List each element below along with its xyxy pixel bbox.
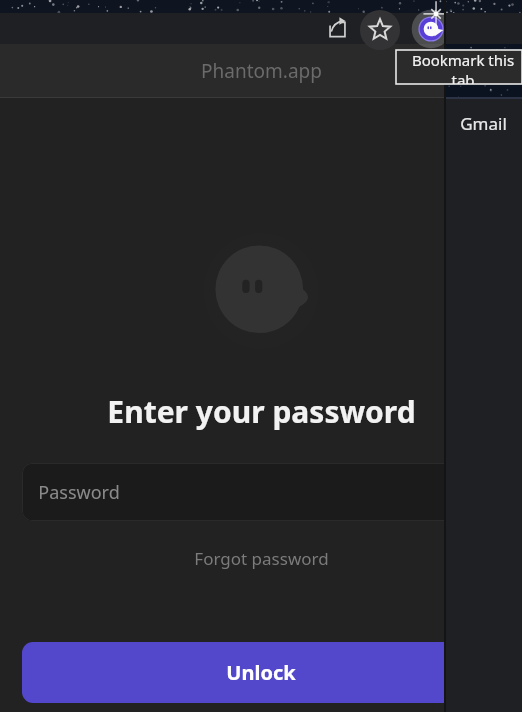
button[interactable]: Bookmark this tab [360,10,400,50]
button[interactable]: Password [22,463,500,521]
staticText: Phantom.app [201,58,322,84]
button[interactable]: Forgot password [184,541,339,576]
button[interactable]: Share [322,13,353,44]
staticText: Bookmark this tab [404,50,522,84]
button[interactable]: MetaMask [456,12,490,46]
button[interactable]: Extensions [494,12,522,42]
staticText: Enter your password [107,391,416,432]
other: Phantom logo [203,233,319,349]
staticText: Password [38,480,120,505]
staticText: Unlock [226,659,296,686]
staticText: Gmail [460,112,507,135]
button[interactable]: Phantom extension [410,8,452,50]
button[interactable]: Unlock [22,642,500,703]
staticText: Forgot password [194,547,329,570]
